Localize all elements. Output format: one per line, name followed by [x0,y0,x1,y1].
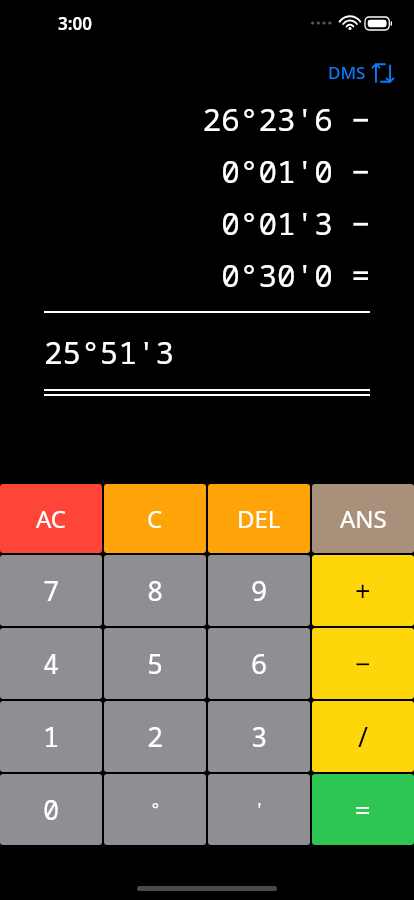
button[interactable]: 5 [104,628,206,699]
button[interactable]: 3 [208,701,310,772]
button[interactable]: + [312,555,414,626]
staticText: DEL [237,502,281,535]
button[interactable]: ANS [312,484,414,553]
staticText: ' [254,797,265,822]
button[interactable]: C [104,484,206,553]
button[interactable]: 1 [0,701,102,772]
button[interactable]: 7 [0,555,102,626]
staticText: C [147,502,163,535]
button[interactable]: DMS [324,58,398,87]
other: Toggle DMS format [372,62,394,84]
staticText: 0°01'3 − [44,202,370,244]
button[interactable]: 0 [0,774,102,845]
button[interactable]: AC [0,484,102,553]
staticText: 26°23'6 − [44,98,370,140]
button[interactable]: ' [208,774,310,845]
button[interactable]: − [312,628,414,699]
staticText: 0 [43,791,60,828]
staticText: / [358,718,369,755]
staticText: 4 [43,645,60,682]
staticText: 25°51'3 [44,331,370,373]
staticText: 9 [251,572,268,609]
staticText: ° [150,797,161,822]
staticText: 6 [251,645,268,682]
staticText: AC [36,502,67,535]
staticText: 8 [147,572,164,609]
staticText: 0°01'0 − [44,150,370,192]
staticText: − [355,645,371,682]
button[interactable]: DEL [208,484,310,553]
button[interactable]: 8 [104,555,206,626]
button[interactable]: 9 [208,555,310,626]
button[interactable]: 4 [0,628,102,699]
button[interactable]: ° [104,774,206,845]
staticText: DMS [328,61,366,84]
staticText: + [355,572,371,609]
staticText: 2 [147,718,164,755]
staticText: 0°30'0 = [44,254,370,296]
staticText: 1 [43,718,60,755]
button[interactable]: 2 [104,701,206,772]
staticText: 7 [43,572,60,609]
staticText: 3:00 [58,12,92,35]
staticText: ANS [340,502,387,535]
staticText: = [355,791,371,828]
staticText: 5 [147,645,164,682]
button[interactable]: 6 [208,628,310,699]
button[interactable]: = [312,774,414,845]
button[interactable]: / [312,701,414,772]
staticText: 3 [251,718,268,755]
